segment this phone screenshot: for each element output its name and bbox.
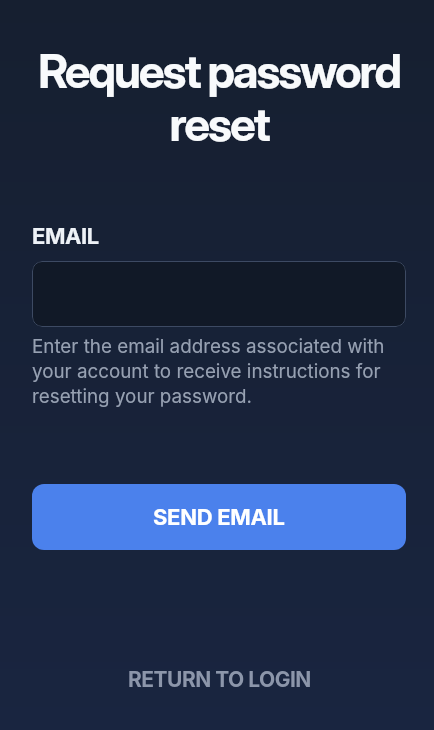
staticText: Request password reset [32, 43, 406, 152]
button[interactable]: SEND EMAIL [32, 484, 406, 550]
button[interactable]: RETURN TO LOGIN [128, 667, 311, 692]
staticText: RETURN TO LOGIN [128, 667, 311, 692]
staticText: EMAIL [32, 223, 406, 250]
staticText: SEND EMAIL [153, 504, 285, 531]
staticText: Enter the email address associated with … [32, 335, 406, 407]
button[interactable] [32, 261, 406, 327]
